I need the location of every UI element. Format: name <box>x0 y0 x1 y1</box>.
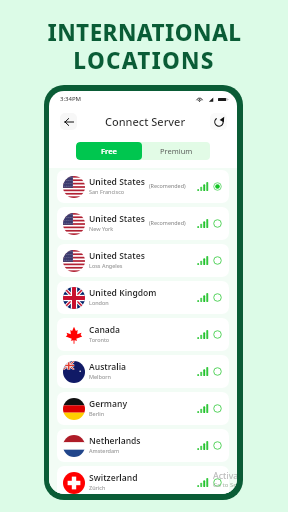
button[interactable]: Canada <box>57 318 229 351</box>
staticText: United States <box>89 176 145 188</box>
staticText: (Recomended) <box>149 182 186 189</box>
button[interactable]: Switzerland <box>57 466 229 494</box>
staticText: Loss Angeles <box>89 262 123 269</box>
staticText: San Francisco <box>89 188 125 195</box>
staticText: United States <box>89 213 145 225</box>
staticText: INTERNATIONAL <box>47 17 242 48</box>
staticText: Connect Server <box>105 114 186 129</box>
staticText: Netherlands <box>89 435 141 447</box>
staticText: United Kingdom <box>89 287 157 299</box>
button[interactable]: Germany <box>57 392 229 425</box>
staticText: (Recomended) <box>149 219 186 226</box>
staticText: 3:34PM <box>60 95 82 103</box>
staticText: United States <box>89 250 145 262</box>
staticText: Free <box>101 146 117 156</box>
staticText: Australia <box>89 361 127 373</box>
staticText: Germany <box>89 398 128 410</box>
button[interactable]: Australia <box>57 355 229 388</box>
button[interactable]: Premium <box>142 142 210 160</box>
staticText: London <box>89 299 109 306</box>
staticText: New York <box>89 225 114 232</box>
button[interactable]: Back <box>60 113 77 130</box>
button[interactable]: Free <box>76 142 142 160</box>
button[interactable]: United Kingdom <box>57 281 229 314</box>
staticText: Berlin <box>89 410 105 417</box>
staticText: Activate Windows <box>213 469 237 481</box>
button[interactable]: Netherlands <box>57 429 229 462</box>
staticText: Go to Settings to activate Windows. <box>213 481 237 489</box>
staticText: Premium <box>160 146 193 156</box>
staticText: Amsterdam <box>89 447 120 454</box>
staticText: Zürich <box>89 484 106 491</box>
staticText: Toronto <box>89 336 110 343</box>
button[interactable]: United States <box>57 244 229 277</box>
staticText: Canada <box>89 324 121 336</box>
staticText: LOCATIONS <box>73 45 215 76</box>
staticText: Melborn <box>89 373 111 380</box>
button[interactable]: Refresh <box>210 113 227 130</box>
button[interactable]: United States <box>57 207 229 240</box>
staticText: Switzerland <box>89 472 138 484</box>
button[interactable]: United States <box>57 170 229 203</box>
